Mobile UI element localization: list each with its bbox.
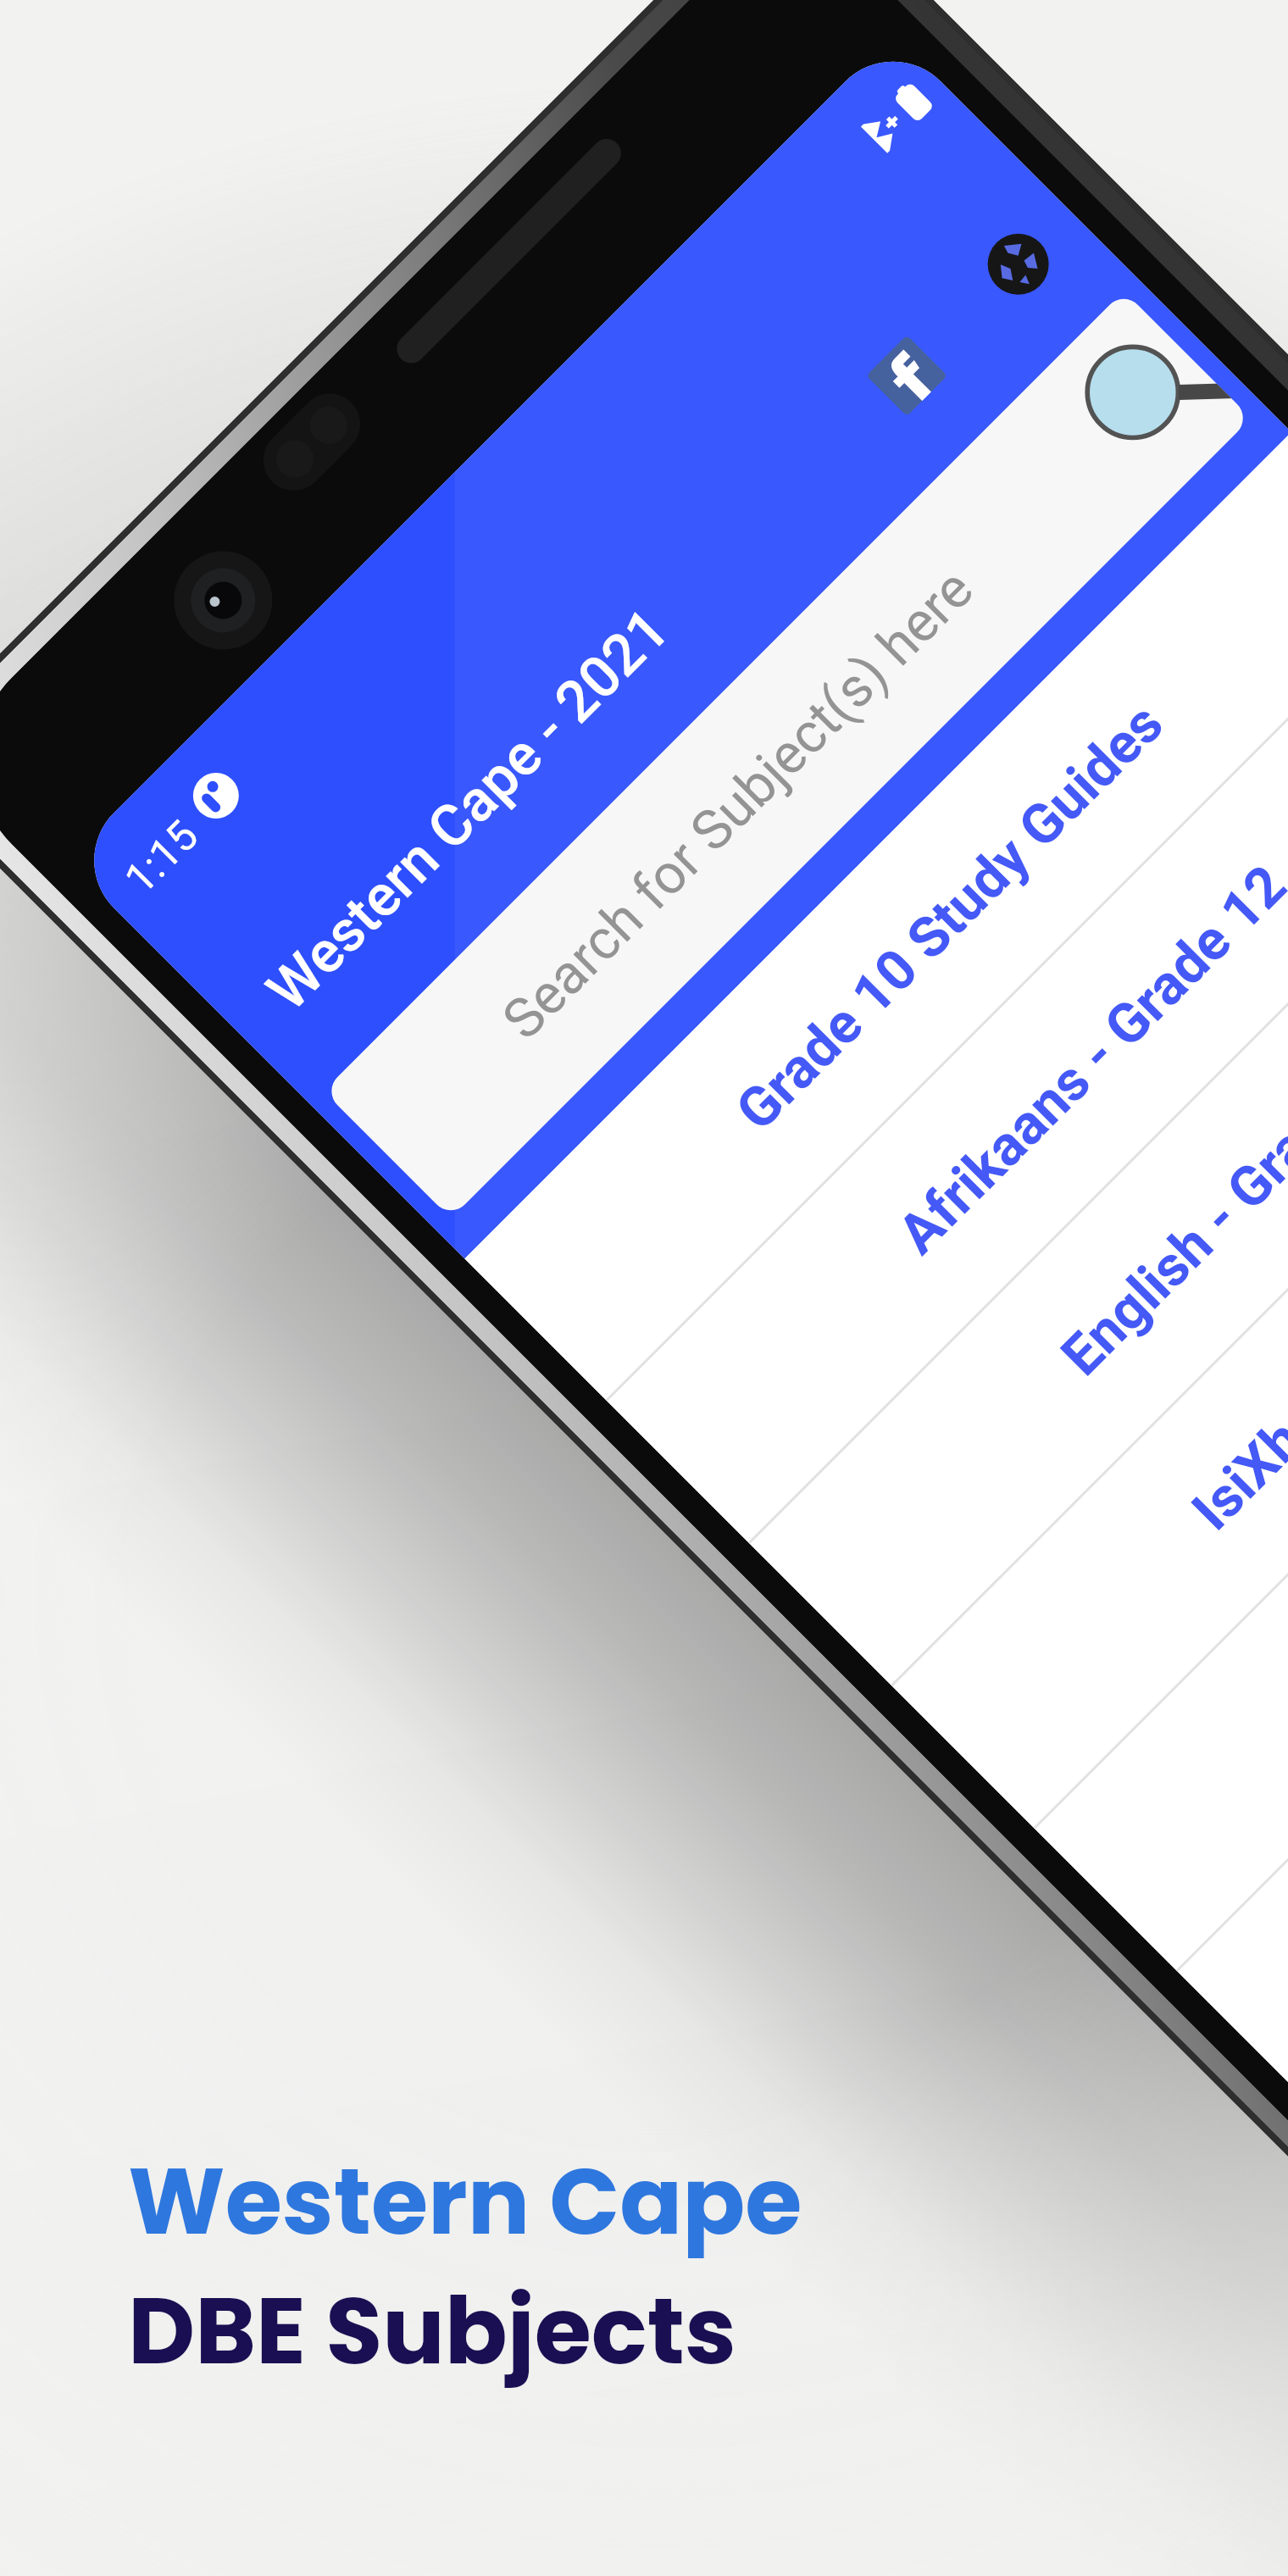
button[interactable]: Afrikaans - Grade 12 [607,575,1288,1544]
staticText: DBE Subjects [128,2267,736,2396]
staticText: English - Grade 12 [1049,1016,1288,1388]
button[interactable]: Search [1049,303,1249,503]
button[interactable]: Grade 10 Study Guides [465,432,1288,1401]
staticText: Search for Subject(s) here [490,557,986,1052]
staticText: Afrikaans - Grade 12 [885,853,1288,1267]
staticText: 1:15 [115,811,209,904]
staticText: Life Sciences - Grade 12 [1280,1247,1288,1727]
button[interactable]: Facebook [866,335,948,416]
button[interactable]: Mathematics - Grade 12 [1178,1145,1288,2115]
button[interactable]: IsiXhosa - Grade 12 [892,860,1288,1829]
button[interactable]: Open website [975,221,1061,307]
button[interactable]: Life Sciences - Grade 12 [1035,1002,1288,1972]
staticText: IsiXhosa - Grade 12 [1179,1147,1288,1543]
staticText: Western Cape - 2021 [254,595,683,1024]
staticText: Western Cape [128,2137,802,2267]
button[interactable]: Search for Subject(s) here [323,291,1251,1219]
button[interactable]: English - Grade 12 [750,717,1288,1687]
staticText: Grade 10 Study Guides [723,691,1176,1143]
